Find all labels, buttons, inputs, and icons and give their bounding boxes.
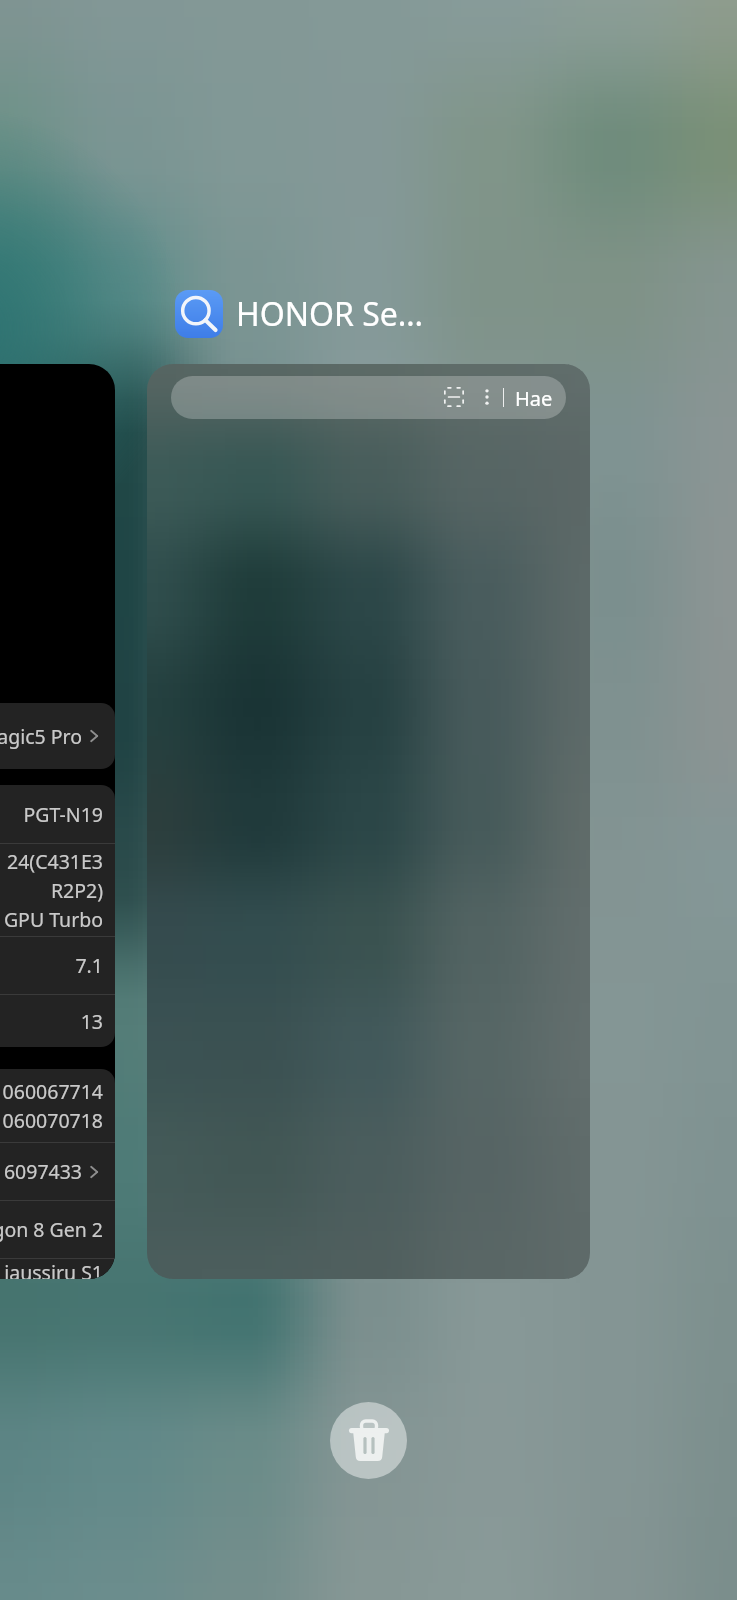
button[interactable]: agic5 Pro — [0, 703, 103, 769]
button[interactable]: Clear all recent apps — [330, 1402, 407, 1479]
staticText: agic5 Pro — [0, 723, 82, 750]
button[interactable]: 13 — [0, 995, 103, 1047]
button[interactable]: PGT-N19 — [0, 785, 103, 843]
staticText: gon 8 Gen 2 — [0, 1216, 103, 1243]
staticText: HONOR Se… — [236, 292, 424, 336]
staticText: PGT-N19 — [23, 801, 103, 828]
staticText: 13 — [80, 1008, 103, 1035]
button[interactable]: gon 8 Gen 2 — [0, 1201, 103, 1258]
button[interactable]: Search — [171, 376, 566, 419]
staticText: 6097433 — [3, 1158, 82, 1185]
button[interactable]: Settings – device info, recent app — [0, 364, 115, 1279]
button[interactable]: 6097433 — [0, 1143, 103, 1200]
button[interactable]: 7.1 — [0, 937, 103, 994]
button[interactable]: Scan — [444, 387, 464, 407]
button[interactable]: iaussiru S1 — [0, 1259, 103, 1279]
staticText: 24(C431E3 R2P2) GPU Turbo — [3, 848, 103, 932]
staticText: Hae — [515, 385, 553, 412]
staticText: 060067714 060070718 — [2, 1078, 103, 1133]
button[interactable]: 24(C431E3 R2P2) GPU Turbo — [0, 844, 103, 936]
button[interactable]: 060067714 060070718 — [0, 1069, 103, 1142]
button[interactable]: HONOR Search, recent app — [147, 364, 590, 1279]
staticText: 7.1 — [75, 952, 103, 979]
button[interactable]: More options — [478, 386, 496, 408]
staticText: iaussiru S1 — [4, 1259, 103, 1279]
